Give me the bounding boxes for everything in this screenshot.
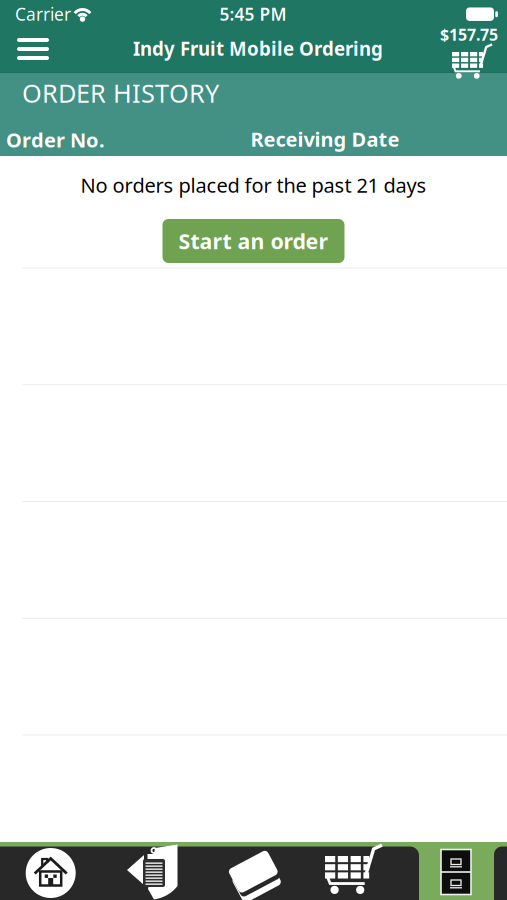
- staticText: Carrier: [15, 2, 71, 25]
- staticText: Order No.: [6, 126, 105, 153]
- button[interactable]: Home: [0, 842, 101, 900]
- button[interactable]: Order History: [406, 842, 507, 900]
- button[interactable]: Start an order: [162, 219, 344, 263]
- staticText: Start an order: [178, 227, 328, 255]
- button[interactable]: Cart: [440, 18, 506, 76]
- button[interactable]: Shopping Cart: [304, 842, 405, 900]
- button[interactable]: Menu: [11, 31, 55, 67]
- button[interactable]: Catalog: [203, 842, 304, 900]
- staticText: ORDER HISTORY: [22, 76, 219, 110]
- staticText: 5:45 PM: [219, 2, 286, 25]
- button[interactable]: Order Guide: [102, 842, 203, 900]
- staticText: $157.75: [440, 24, 498, 45]
- staticText: No orders placed for the past 21 days: [80, 172, 426, 198]
- staticText: Receiving Date: [250, 126, 399, 152]
- staticText: Indy Fruit Mobile Ordering: [133, 36, 383, 61]
